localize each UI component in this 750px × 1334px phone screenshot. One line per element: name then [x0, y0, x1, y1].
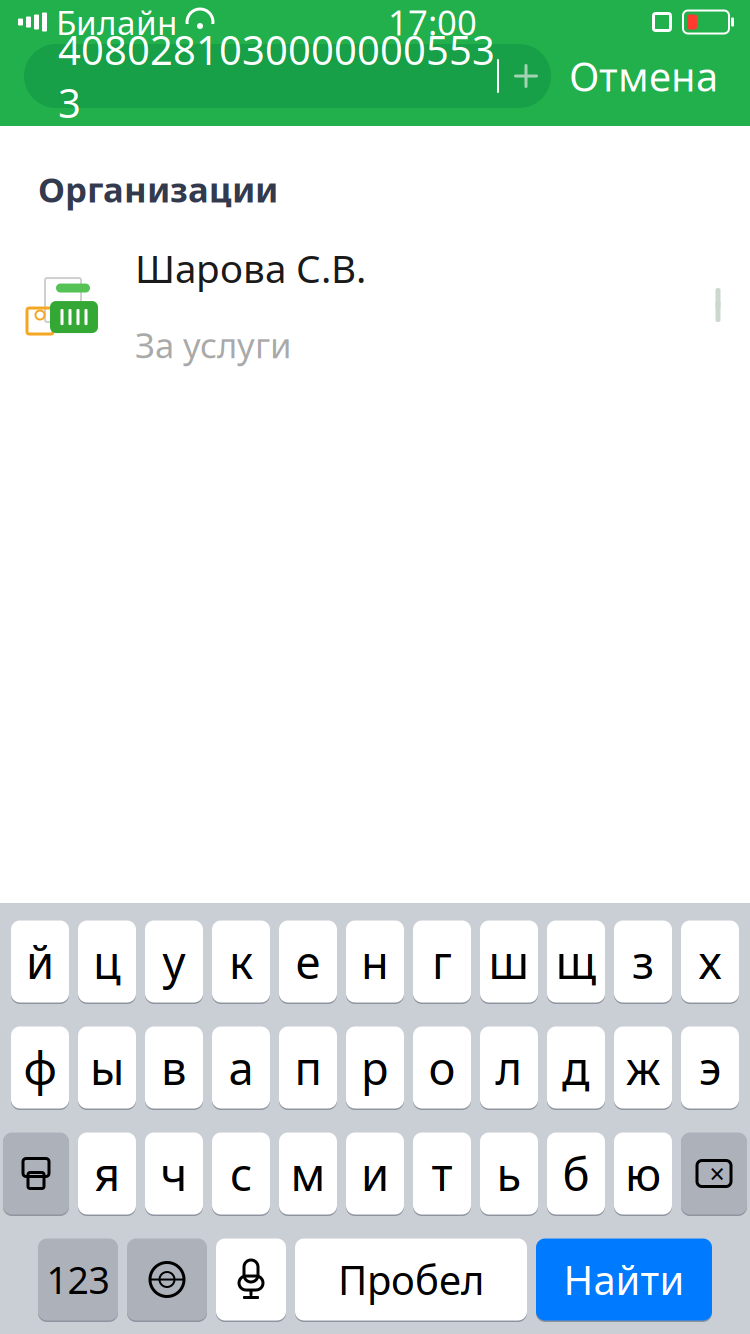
- staticText: с: [230, 1143, 252, 1204]
- staticText: и: [361, 1143, 389, 1204]
- button[interactable]: с: [212, 1131, 270, 1216]
- button[interactable]: н: [346, 919, 404, 1004]
- staticText: 123: [46, 1255, 109, 1304]
- staticText: м: [290, 1143, 325, 1204]
- staticText: н: [361, 931, 389, 992]
- staticText: 17:00: [388, 0, 477, 45]
- button[interactable]: б: [547, 1131, 605, 1216]
- button[interactable]: Backspace: [681, 1131, 747, 1216]
- button[interactable]: ю: [614, 1131, 672, 1216]
- staticText: п: [294, 1037, 321, 1098]
- button[interactable]: Dictation: [216, 1237, 286, 1322]
- staticText: у: [162, 931, 185, 992]
- staticText: к: [229, 931, 253, 992]
- button[interactable]: ь: [480, 1131, 538, 1216]
- staticText: За услуги: [135, 322, 292, 368]
- staticText: б: [562, 1143, 589, 1204]
- button[interactable]: ф: [11, 1025, 69, 1110]
- staticText: ш: [488, 931, 529, 992]
- button[interactable]: ж: [614, 1025, 672, 1110]
- staticText: е: [295, 931, 320, 992]
- staticText: я: [94, 1143, 120, 1204]
- button[interactable]: л: [480, 1025, 538, 1110]
- staticText: р: [361, 1037, 389, 1098]
- staticText: ж: [626, 1037, 660, 1098]
- staticText: ц: [93, 931, 121, 992]
- button[interactable]: о: [413, 1025, 471, 1110]
- button[interactable]: Switch keyboard language: [127, 1237, 207, 1322]
- button[interactable]: ы: [78, 1025, 136, 1110]
- button[interactable]: х: [681, 919, 739, 1004]
- button[interactable]: п: [279, 1025, 337, 1110]
- button[interactable]: Шарова С.В.: [0, 240, 750, 370]
- button[interactable]: Shift: [3, 1131, 69, 1216]
- staticText: й: [26, 931, 54, 992]
- staticText: ю: [625, 1143, 661, 1204]
- staticText: Шарова С.В.: [135, 242, 366, 294]
- button[interactable]: й: [11, 919, 69, 1004]
- button[interactable]: е: [279, 919, 337, 1004]
- staticText: Найти: [563, 1253, 684, 1306]
- staticText: Билайн: [56, 0, 177, 44]
- staticText: ×: [709, 1156, 724, 1191]
- button[interactable]: и: [346, 1131, 404, 1216]
- button[interactable]: в: [145, 1025, 203, 1110]
- staticText: д: [562, 1037, 590, 1098]
- staticText: л: [495, 1037, 522, 1098]
- button[interactable]: ш: [480, 919, 538, 1004]
- staticText: з: [632, 931, 654, 992]
- staticText: 40802810300000005533: [58, 23, 495, 129]
- staticText: э: [699, 1037, 721, 1098]
- staticText: ь: [496, 1143, 521, 1204]
- button[interactable]: к: [212, 919, 270, 1004]
- button[interactable]: ч: [145, 1131, 203, 1216]
- button[interactable]: з: [614, 919, 672, 1004]
- staticText: ф: [23, 1037, 56, 1098]
- button[interactable]: я: [78, 1131, 136, 1216]
- staticText: г: [432, 931, 452, 992]
- button[interactable]: д: [547, 1025, 605, 1110]
- button[interactable]: м: [279, 1131, 337, 1216]
- button[interactable]: ц: [78, 919, 136, 1004]
- button[interactable]: Пробел: [295, 1237, 527, 1322]
- button[interactable]: а: [212, 1025, 270, 1110]
- staticText: щ: [555, 931, 596, 992]
- button[interactable]: Найти: [536, 1237, 712, 1322]
- button[interactable]: 123: [38, 1237, 118, 1322]
- button[interactable]: р: [346, 1025, 404, 1110]
- button[interactable]: 40802810300000005533: [24, 44, 551, 108]
- button[interactable]: Отмена: [551, 44, 736, 108]
- button[interactable]: т: [413, 1131, 471, 1216]
- staticText: ы: [90, 1037, 124, 1098]
- button[interactable]: щ: [547, 919, 605, 1004]
- staticText: Отмена: [569, 49, 718, 102]
- staticText: Пробел: [338, 1253, 484, 1306]
- staticText: о: [428, 1037, 455, 1098]
- button[interactable]: э: [681, 1025, 739, 1110]
- staticText: а: [228, 1037, 253, 1098]
- staticText: в: [161, 1037, 187, 1098]
- staticText: х: [698, 931, 721, 992]
- staticText: Организации: [38, 166, 278, 212]
- staticText: т: [431, 1143, 452, 1204]
- button[interactable]: г: [413, 919, 471, 1004]
- staticText: ч: [160, 1143, 187, 1204]
- button[interactable]: у: [145, 919, 203, 1004]
